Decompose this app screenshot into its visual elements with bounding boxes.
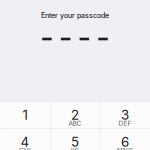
staticText: 2	[71, 107, 79, 123]
staticText: MNO	[117, 147, 133, 150]
staticText: JKL	[69, 147, 81, 150]
staticText: 4	[20, 134, 29, 150]
button[interactable]: 4	[0, 128, 50, 150]
button[interactable]: 1	[0, 101, 50, 128]
staticText: 3	[121, 107, 129, 123]
button[interactable]: 3	[100, 101, 150, 128]
button[interactable]: 2	[50, 101, 100, 128]
staticText: 6	[121, 134, 129, 150]
staticText: 1	[22, 107, 27, 123]
button[interactable]: 6	[100, 128, 150, 150]
button[interactable]: 5	[50, 128, 100, 150]
staticText: GHI	[19, 147, 31, 150]
staticText: 5	[71, 134, 79, 150]
staticText: Enter your passcode	[41, 11, 109, 20]
staticText: ABC	[68, 120, 81, 127]
staticText: DEF	[118, 120, 131, 127]
